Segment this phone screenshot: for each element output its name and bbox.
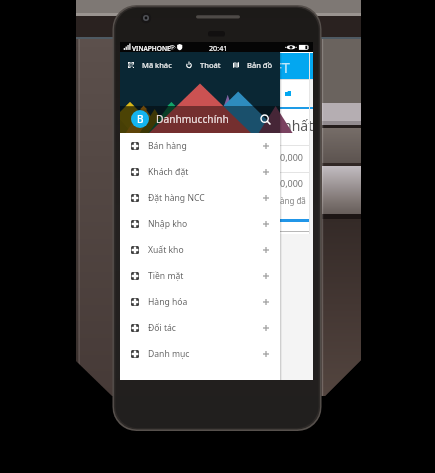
staticText: Mã khác	[142, 60, 172, 70]
staticText: Xuất kho	[148, 244, 184, 256]
button[interactable]: Tiền mặt	[120, 263, 280, 289]
staticText: Bán hàng	[148, 140, 187, 152]
staticText: Danhmucchính	[156, 112, 229, 126]
staticText: Đặt hàng NCC	[148, 192, 205, 204]
staticText: VINAPHONE	[132, 44, 171, 53]
button[interactable]: Đặt hàng NCC	[120, 185, 280, 211]
button[interactable]: Xuất kho	[120, 237, 280, 263]
staticText: àng đã	[280, 195, 306, 206]
button[interactable]: Khách đặt	[120, 159, 280, 185]
button[interactable]: Đối tác	[120, 315, 280, 341]
staticText: Đối tác	[148, 322, 176, 334]
staticText: Hàng hóa	[148, 296, 188, 308]
staticText: B	[137, 112, 144, 126]
staticText: Danh mục	[148, 348, 190, 360]
staticText: Khách đặt	[148, 166, 189, 178]
button[interactable]: Nhập kho	[120, 211, 280, 237]
staticText: 20:41	[209, 43, 228, 53]
button[interactable]: Bán hàng	[120, 133, 280, 159]
staticText: 0,000	[280, 177, 304, 189]
button[interactable]: Thoát	[186, 52, 221, 77]
button[interactable]: Bản đồ	[233, 52, 273, 77]
staticText: Bản đồ	[247, 60, 273, 70]
button[interactable]: Mã khác	[128, 52, 172, 77]
staticText: SOFT	[256, 58, 290, 77]
staticText: Nhập kho	[148, 218, 188, 230]
button[interactable]: Tìm kiếm	[255, 109, 275, 129]
button[interactable]: B	[120, 105, 280, 133]
staticText: Thoát	[200, 60, 221, 70]
staticText: nhất	[283, 116, 313, 135]
button[interactable]: Danh mục	[120, 341, 280, 367]
staticText: 0,000	[280, 151, 304, 163]
button[interactable]: Hàng hóa	[120, 289, 280, 315]
staticText: Tiền mặt	[148, 270, 184, 282]
